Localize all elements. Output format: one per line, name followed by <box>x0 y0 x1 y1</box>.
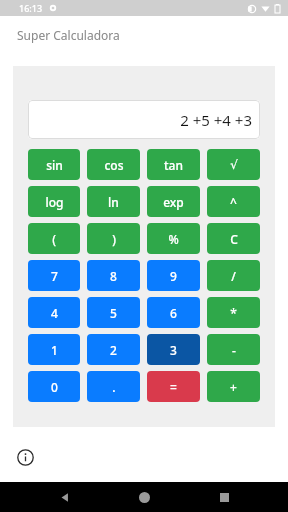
staticText: - <box>232 342 236 358</box>
button[interactable]: ln <box>87 186 140 217</box>
staticText: 2 +5 +4 +3 <box>180 110 252 130</box>
staticText: . <box>112 379 116 395</box>
button[interactable]: . <box>87 371 140 402</box>
staticText: tan <box>164 157 183 173</box>
staticText: log <box>45 194 64 210</box>
button[interactable]: 8 <box>87 260 140 291</box>
staticText: 4 <box>51 305 58 321</box>
staticText: 16:13 <box>19 2 43 14</box>
button[interactable]: 0 <box>28 371 80 402</box>
staticText: sin <box>46 157 63 173</box>
staticText: √ <box>230 158 238 172</box>
staticText: 8 <box>110 268 117 284</box>
button[interactable]: ^ <box>207 186 260 217</box>
button[interactable]: 1 <box>28 334 80 365</box>
button[interactable]: Back <box>50 482 80 512</box>
button[interactable]: ) <box>87 223 140 254</box>
button[interactable]: * <box>207 297 260 328</box>
button[interactable]: + <box>207 371 260 402</box>
staticText: 1 <box>51 342 58 358</box>
staticText: exp <box>163 194 184 210</box>
staticText: 5 <box>110 305 117 321</box>
button[interactable]: exp <box>147 186 200 217</box>
button[interactable]: 4 <box>28 297 80 328</box>
button[interactable]: - <box>207 334 260 365</box>
staticText: = <box>170 379 177 395</box>
button[interactable]: 9 <box>147 260 200 291</box>
staticText: 7 <box>51 268 58 284</box>
staticText: 3 <box>170 342 177 358</box>
button[interactable]: 2 <box>87 334 140 365</box>
button[interactable]: 3 <box>147 334 200 365</box>
staticText: * <box>230 305 237 321</box>
button[interactable]: log <box>28 186 80 217</box>
button[interactable]: 7 <box>28 260 80 291</box>
button[interactable]: sin <box>28 149 80 180</box>
staticText: 2 <box>110 342 117 358</box>
staticText: C <box>230 231 238 247</box>
button[interactable]: 6 <box>147 297 200 328</box>
staticText: ( <box>52 231 56 247</box>
button[interactable]: Info <box>13 445 37 469</box>
staticText: ^ <box>230 194 237 210</box>
staticText: + <box>230 379 237 395</box>
staticText: ) <box>112 231 116 247</box>
button[interactable]: tan <box>147 149 200 180</box>
button[interactable]: Recent apps <box>209 482 239 512</box>
staticText: ln <box>108 194 119 210</box>
button[interactable]: Home <box>129 482 159 512</box>
button[interactable]: 2 +5 +4 +3 <box>28 100 260 139</box>
button[interactable]: C <box>207 223 260 254</box>
staticText: 0 <box>51 379 58 395</box>
staticText: Super Calculadora <box>17 27 120 43</box>
staticText: / <box>231 268 236 284</box>
button[interactable]: = <box>147 371 200 402</box>
staticText: 6 <box>170 305 177 321</box>
button[interactable]: / <box>207 260 260 291</box>
button[interactable]: ( <box>28 223 80 254</box>
button[interactable]: 5 <box>87 297 140 328</box>
staticText: % <box>168 231 179 247</box>
button[interactable]: % <box>147 223 200 254</box>
button[interactable]: cos <box>87 149 140 180</box>
staticText: cos <box>104 157 124 173</box>
button[interactable]: √ <box>207 149 260 180</box>
staticText: 9 <box>170 268 177 284</box>
